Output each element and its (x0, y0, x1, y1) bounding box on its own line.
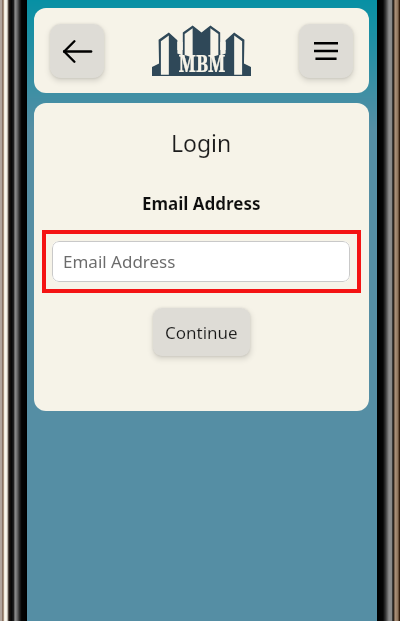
staticText: MBM (178, 47, 226, 78)
button[interactable]: Email Address (52, 241, 350, 282)
button[interactable]: Continue (153, 308, 250, 356)
button[interactable]: Menu (299, 24, 353, 78)
staticText: Email Address (142, 192, 261, 215)
staticText: Email Address (63, 250, 176, 273)
staticText: Login (171, 127, 232, 158)
staticText: Continue (165, 321, 238, 344)
button[interactable]: Back (50, 24, 104, 78)
